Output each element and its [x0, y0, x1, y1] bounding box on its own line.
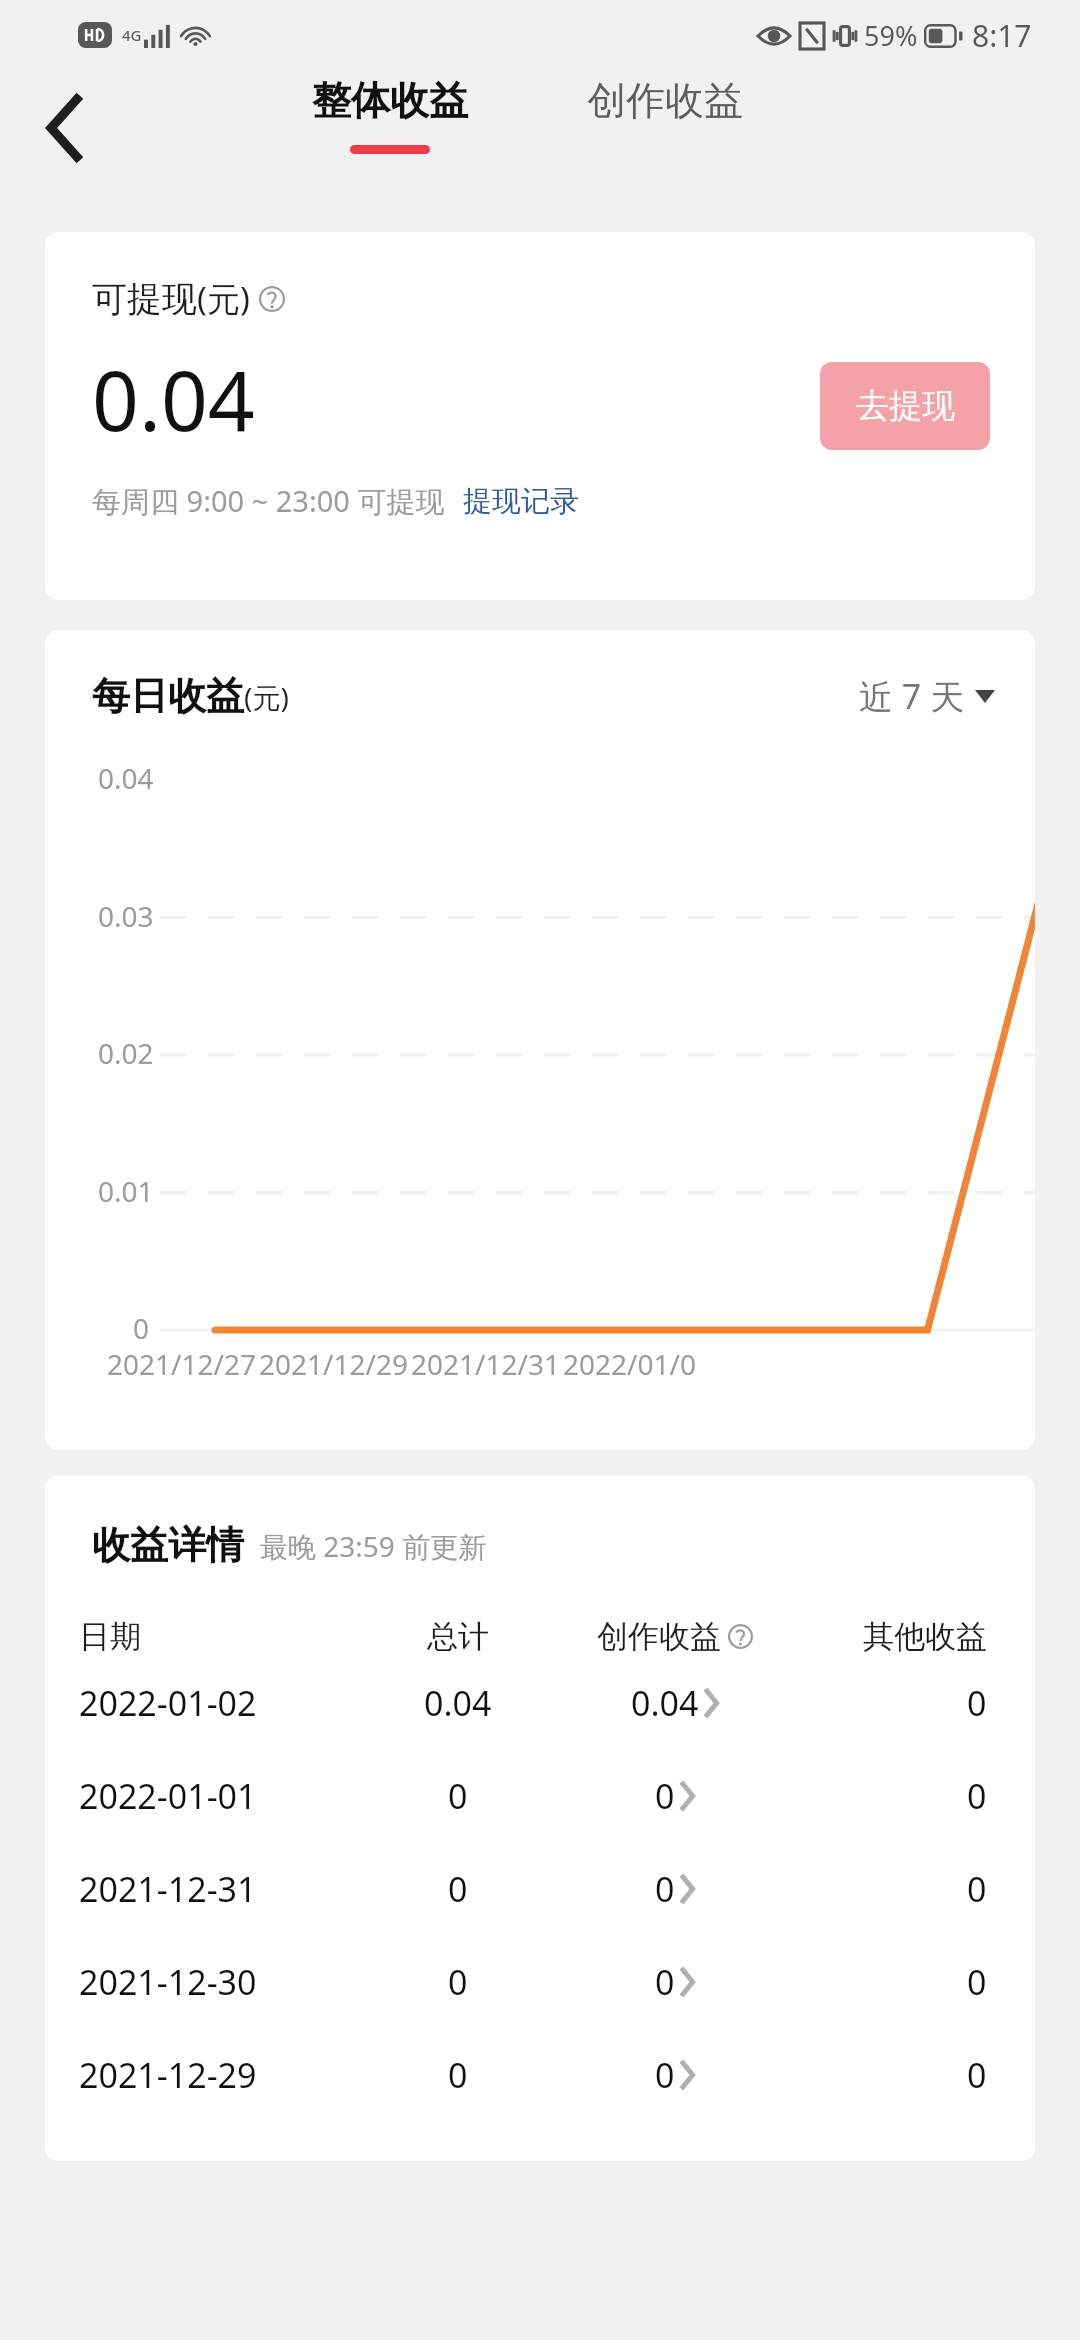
staticText: 0 — [448, 2052, 468, 2098]
staticText: 可提现 — [92, 277, 197, 321]
staticText: 2021/12/29 — [259, 1345, 408, 1383]
staticText: 0 — [967, 1959, 987, 2005]
staticText: 日期 — [79, 1617, 141, 1656]
staticText: 0 — [655, 1866, 675, 1912]
staticText: 最晚 23:59 前更新 — [260, 1527, 487, 1565]
staticText: 2021/12/31 — [411, 1345, 560, 1383]
button[interactable]: 2022-01-01 — [45, 1749, 1035, 1842]
staticText: 近 7 天 — [859, 673, 965, 719]
staticText: 8:17 — [972, 15, 1032, 56]
staticText: 2021/12/27 — [107, 1345, 256, 1383]
button[interactable]: 2022-01-02 — [45, 1656, 1035, 1749]
staticText: 0.02 — [98, 1034, 154, 1072]
staticText: 0 — [448, 1773, 468, 1819]
staticText: 去提现 — [856, 385, 955, 427]
staticText: 0 — [967, 1773, 987, 1819]
staticText: 59% — [864, 17, 918, 54]
staticText: 每日收益 — [92, 672, 244, 720]
button[interactable]: 2021-12-30 — [45, 1935, 1035, 2028]
staticText: 创作收益 — [565, 76, 765, 125]
staticText: 2022/01/0 — [563, 1345, 696, 1383]
button[interactable]: Back — [24, 88, 104, 168]
staticText: 0 — [967, 2052, 987, 2098]
staticText: 0 — [655, 1773, 675, 1819]
staticText: 0 — [448, 1959, 468, 2005]
staticText: 2021-12-31 — [79, 1866, 257, 1912]
staticText: 0 — [133, 1309, 150, 1347]
button[interactable]: 整体收益 — [290, 76, 490, 154]
staticText: (元) — [197, 276, 250, 321]
staticText: 0 — [448, 1866, 468, 1912]
staticText: 0.03 — [98, 897, 154, 935]
staticText: 0.04 — [98, 759, 154, 797]
button[interactable]: 2021-12-29 — [45, 2028, 1035, 2121]
staticText: 整体收益 — [290, 76, 490, 125]
staticText: 提现记录 — [463, 483, 579, 520]
staticText: 每周四 9:00 ~ 23:00 可提现 — [92, 481, 445, 521]
staticText: 总计 — [427, 1617, 489, 1656]
staticText: 0 — [967, 1680, 987, 1726]
staticText: 创作收益 — [597, 1617, 721, 1656]
staticText: 2021-12-30 — [79, 1959, 257, 2005]
button[interactable]: 提现记录 — [463, 483, 579, 520]
staticText: 4G — [122, 25, 142, 45]
staticText: 2022-01-01 — [79, 1773, 257, 1819]
staticText: 0 — [967, 1866, 987, 1912]
button[interactable]: 近 7 天 — [859, 673, 995, 719]
staticText: 0.01 — [98, 1172, 154, 1210]
staticText: 2021-12-29 — [79, 2052, 257, 2098]
staticText: 0.04 — [631, 1680, 699, 1726]
button[interactable]: 2021-12-31 — [45, 1842, 1035, 1935]
staticText: 收益详情 — [92, 1521, 244, 1569]
staticText: 其他收益 — [863, 1617, 987, 1656]
button[interactable]: 去提现 — [820, 362, 990, 450]
staticText: 0.04 — [92, 343, 255, 455]
button[interactable]: 创作收益 — [565, 76, 765, 125]
staticText: 0.04 — [424, 1680, 492, 1726]
staticText: (元) — [244, 678, 289, 716]
staticText: 0 — [655, 2052, 675, 2098]
staticText: 2022-01-02 — [79, 1680, 257, 1726]
staticText: 0 — [655, 1959, 675, 2005]
